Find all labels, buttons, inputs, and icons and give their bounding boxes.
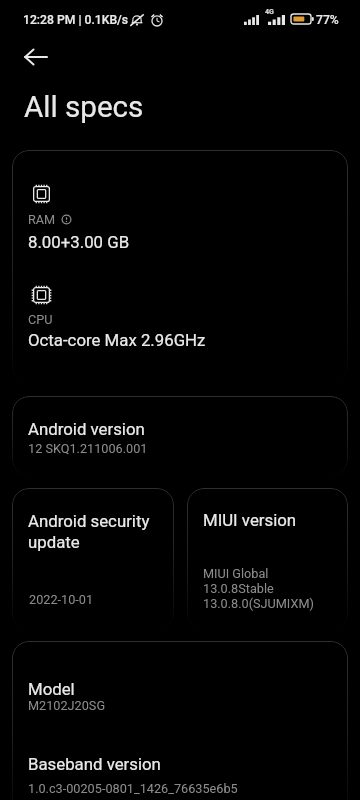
staticText: MIUI Global 13.0.8Stable 13.0.8.0(SJUMIX…	[203, 566, 314, 611]
button[interactable]: RAM	[12, 150, 348, 383]
staticText: MIUI version	[203, 510, 297, 530]
button[interactable]: Android security update	[12, 488, 174, 630]
button[interactable]: Android version	[12, 396, 348, 476]
button[interactable]: Model	[12, 641, 348, 800]
staticText: 77%	[316, 13, 339, 27]
staticText: Android security update	[28, 510, 150, 552]
button[interactable]: Back	[23, 44, 49, 70]
staticText: RAM	[28, 212, 56, 227]
staticText: 8.00+3.00 GB	[28, 232, 130, 252]
staticText: M2102J20SG	[28, 698, 106, 713]
staticText: 2022-10-01	[29, 592, 94, 607]
staticText: 1.0.c3-00205-0801_1426_76635e6b5	[28, 781, 238, 796]
staticText: Octa-core Max 2.96GHz	[28, 330, 206, 350]
button[interactable]: MIUI version	[187, 488, 348, 630]
staticText: Android version	[28, 419, 145, 439]
staticText: All specs	[24, 90, 144, 125]
staticText: CPU	[28, 312, 53, 327]
staticText: 12 SKQ1.211006.001	[28, 441, 148, 456]
staticText: Baseband version	[28, 754, 161, 774]
staticText: 4G	[265, 8, 274, 16]
staticText: Model	[28, 679, 75, 699]
staticText: 12:28 PM | 0.1KB/s	[23, 13, 129, 27]
